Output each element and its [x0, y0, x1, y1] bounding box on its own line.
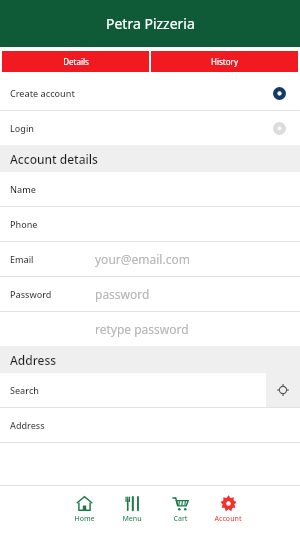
staticText: Home	[74, 514, 95, 524]
staticText: Phone	[10, 218, 38, 230]
staticText: Name	[10, 183, 36, 195]
staticText: Account details	[10, 151, 98, 167]
button[interactable]: Details	[2, 51, 149, 72]
staticText: Menu	[122, 514, 142, 524]
button[interactable]: Password	[0, 277, 300, 311]
staticText: Cart	[173, 514, 188, 524]
button[interactable]: Search	[0, 373, 266, 407]
button[interactable]: Name	[0, 172, 300, 206]
staticText: Address	[10, 352, 57, 368]
button[interactable]: Phone	[0, 207, 300, 241]
button[interactable]: Login	[0, 111, 300, 145]
staticText: your@email.com	[95, 251, 190, 267]
button[interactable]: retype password	[0, 312, 300, 346]
staticText: Address	[10, 419, 45, 431]
staticText: Email	[10, 253, 34, 265]
staticText: Account	[214, 514, 242, 524]
staticText: History	[211, 56, 238, 67]
staticText: retype password	[95, 321, 189, 337]
staticText: Petra Pizzeria	[106, 14, 195, 33]
staticText: Login	[10, 122, 34, 134]
button[interactable]: Account	[204, 486, 252, 533]
button[interactable]: History	[151, 51, 298, 72]
button[interactable]: Email	[0, 242, 300, 276]
button[interactable]: Home	[60, 486, 108, 533]
button[interactable]: Cart	[156, 486, 204, 533]
staticText: Search	[10, 384, 39, 396]
staticText: Password	[10, 288, 52, 300]
button[interactable]: Menu	[108, 486, 156, 533]
button[interactable]: Create account	[0, 76, 300, 110]
staticText: Create account	[10, 87, 75, 99]
staticText: password	[95, 286, 150, 302]
button[interactable]: Address	[0, 408, 300, 442]
button[interactable]: Use my location	[266, 373, 300, 407]
staticText: Details	[63, 56, 89, 67]
